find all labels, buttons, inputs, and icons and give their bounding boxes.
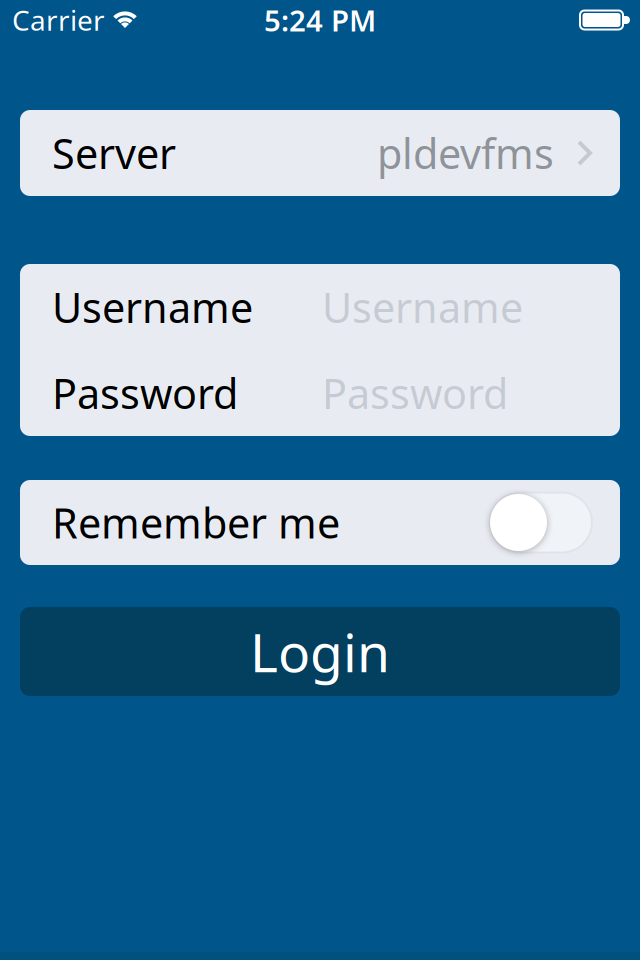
staticText: Login: [250, 616, 390, 687]
staticText: 5:24 PM: [264, 0, 376, 39]
staticText: Password: [322, 366, 508, 420]
staticText: Password: [52, 366, 238, 420]
staticText: Remember me: [52, 495, 340, 550]
staticText: pldevfms: [377, 126, 554, 180]
staticText: Username: [322, 280, 523, 334]
button[interactable]: Username: [20, 264, 620, 350]
staticText: Username: [52, 280, 253, 334]
staticText: Server: [52, 126, 176, 180]
button[interactable]: Server: [20, 110, 620, 196]
button[interactable]: Remember me: [490, 492, 592, 552]
button[interactable]: Password: [20, 350, 620, 436]
button[interactable]: Login: [20, 607, 620, 696]
staticText: Carrier: [12, 1, 105, 39]
